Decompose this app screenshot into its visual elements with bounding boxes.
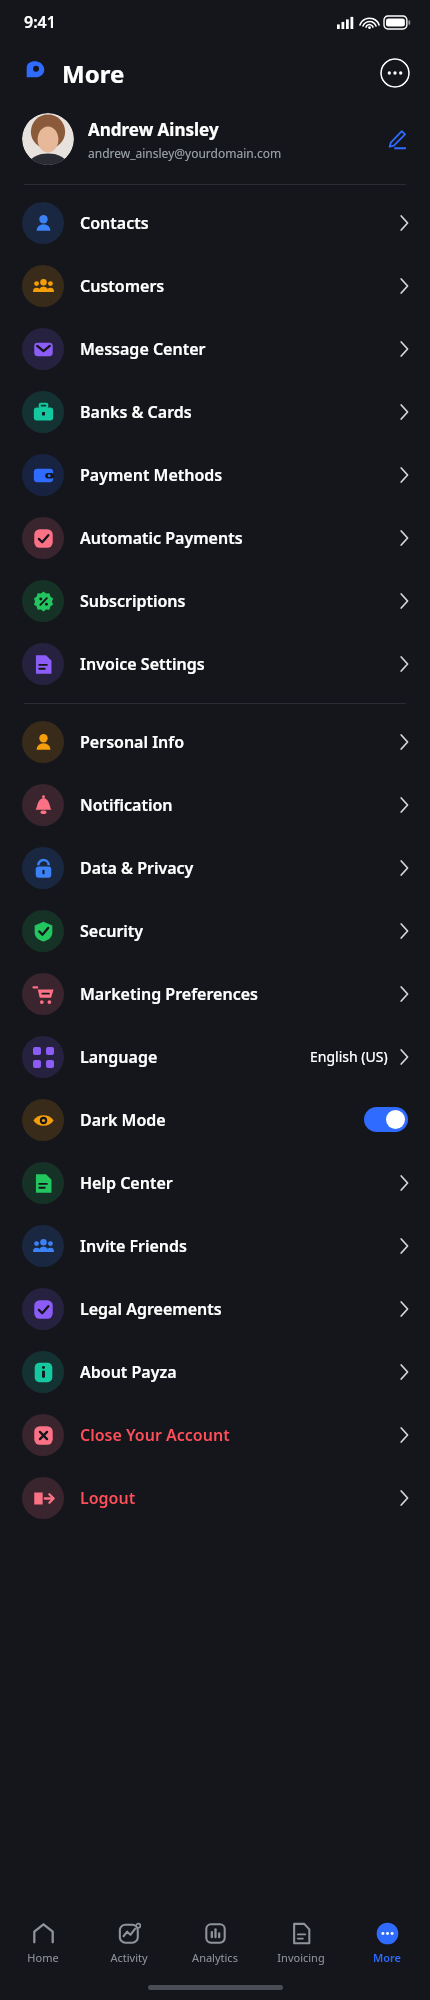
button[interactable]: Message Center [22, 317, 408, 380]
staticText: More [62, 57, 125, 90]
button[interactable]: Automatic Payments [22, 506, 408, 569]
button[interactable]: Invoice Settings [22, 632, 408, 695]
staticText: Message Center [80, 338, 206, 360]
button[interactable]: Data & Privacy [22, 836, 408, 899]
button[interactable]: Andrew Ainsley [22, 102, 410, 176]
button[interactable]: About Payza [22, 1340, 408, 1403]
staticText: Andrew Ainsley [88, 118, 219, 141]
staticText: Dark Mode [80, 1109, 166, 1131]
staticText: 9:41 [24, 11, 56, 33]
staticText: Customers [80, 275, 165, 297]
staticText: Help Center [80, 1172, 173, 1194]
button[interactable]: Personal Info [22, 710, 408, 773]
button[interactable] [364, 1107, 408, 1132]
staticText: About Payza [80, 1361, 177, 1383]
staticText: Notification [80, 794, 173, 816]
staticText: Analytics [192, 1950, 238, 1965]
staticText: Security [80, 920, 144, 942]
button[interactable]: Close Your Account [22, 1403, 408, 1466]
button[interactable]: Logout [22, 1466, 408, 1529]
button[interactable]: Marketing Preferences [22, 962, 408, 1025]
staticText: Personal Info [80, 731, 185, 753]
staticText: Language [80, 1046, 158, 1068]
button[interactable]: Language [22, 1025, 408, 1088]
staticText: Payment Methods [80, 464, 223, 486]
staticText: Legal Agreements [80, 1298, 222, 1320]
staticText: Activity [110, 1950, 148, 1965]
button[interactable]: More options [380, 58, 410, 88]
staticText: Home [27, 1950, 59, 1965]
staticText: Invoicing [277, 1950, 325, 1965]
button[interactable]: Contacts [22, 191, 408, 254]
staticText: Data & Privacy [80, 857, 194, 879]
button[interactable]: Invite Friends [22, 1214, 408, 1277]
staticText: Banks & Cards [80, 401, 192, 423]
staticText: Subscriptions [80, 590, 186, 612]
button[interactable]: Analytics [172, 1912, 258, 1974]
button[interactable]: Subscriptions [22, 569, 408, 632]
staticText: Logout [80, 1487, 136, 1509]
staticText: Marketing Preferences [80, 983, 258, 1005]
staticText: Invoice Settings [80, 653, 205, 675]
staticText: Close Your Account [80, 1424, 230, 1446]
button[interactable]: Dark Mode [22, 1088, 408, 1151]
staticText: More [373, 1950, 401, 1965]
button[interactable]: Edit profile [382, 125, 410, 153]
staticText: Invite Friends [80, 1235, 187, 1257]
staticText: Contacts [80, 212, 149, 234]
button[interactable]: Security [22, 899, 408, 962]
button[interactable]: Notification [22, 773, 408, 836]
staticText: English (US) [310, 1047, 388, 1066]
button[interactable]: Legal Agreements [22, 1277, 408, 1340]
button[interactable]: More [344, 1912, 430, 1974]
button[interactable]: Home [0, 1912, 86, 1974]
button[interactable]: Activity [86, 1912, 172, 1974]
button[interactable]: Help Center [22, 1151, 408, 1214]
button[interactable]: Payment Methods [22, 443, 408, 506]
button[interactable]: Customers [22, 254, 408, 317]
button[interactable]: Banks & Cards [22, 380, 408, 443]
staticText: andrew_ainsley@yourdomain.com [88, 145, 282, 161]
staticText: Automatic Payments [80, 527, 243, 549]
button[interactable]: Invoicing [258, 1912, 344, 1974]
